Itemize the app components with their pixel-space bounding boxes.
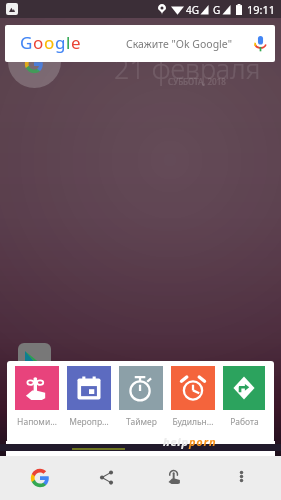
button[interactable]: Voice search	[252, 35, 269, 52]
staticText: g	[55, 31, 66, 54]
staticText: Меропр…	[69, 416, 109, 428]
button[interactable]: Google Play	[18, 343, 51, 376]
staticText: o	[33, 31, 44, 54]
button[interactable]: More options	[236, 471, 247, 482]
staticText: Скажите "Ok Google"	[126, 37, 232, 51]
button[interactable]: Touch	[167, 469, 182, 484]
staticText: Работа	[230, 416, 259, 428]
staticText: l	[66, 31, 71, 54]
staticText: porn	[189, 434, 217, 449]
staticText: G	[20, 31, 33, 54]
button[interactable]: Таймер	[119, 366, 163, 428]
staticText: Будильн…	[172, 416, 214, 428]
button[interactable]: Google search	[30, 468, 50, 488]
staticText: e	[71, 31, 81, 54]
button[interactable]: Будильн…	[171, 366, 215, 428]
staticText: СУББОТА, 2018	[168, 76, 226, 87]
button[interactable]: G	[5, 25, 275, 62]
button[interactable]: Google app	[8, 35, 61, 88]
button[interactable]: Напоми…	[15, 366, 59, 428]
staticText: 4G	[186, 3, 199, 17]
staticText: 21 февраля	[114, 50, 261, 87]
button[interactable]: Share	[99, 470, 114, 485]
staticText: o	[44, 31, 55, 54]
button[interactable]: Меропр…	[67, 366, 111, 428]
staticText: Напоми…	[17, 416, 57, 428]
staticText: Таймер	[126, 416, 157, 428]
staticText: 19:11	[247, 2, 276, 17]
staticText: help	[163, 434, 189, 449]
button[interactable]: Работа	[223, 366, 265, 428]
staticText: G	[213, 3, 221, 17]
